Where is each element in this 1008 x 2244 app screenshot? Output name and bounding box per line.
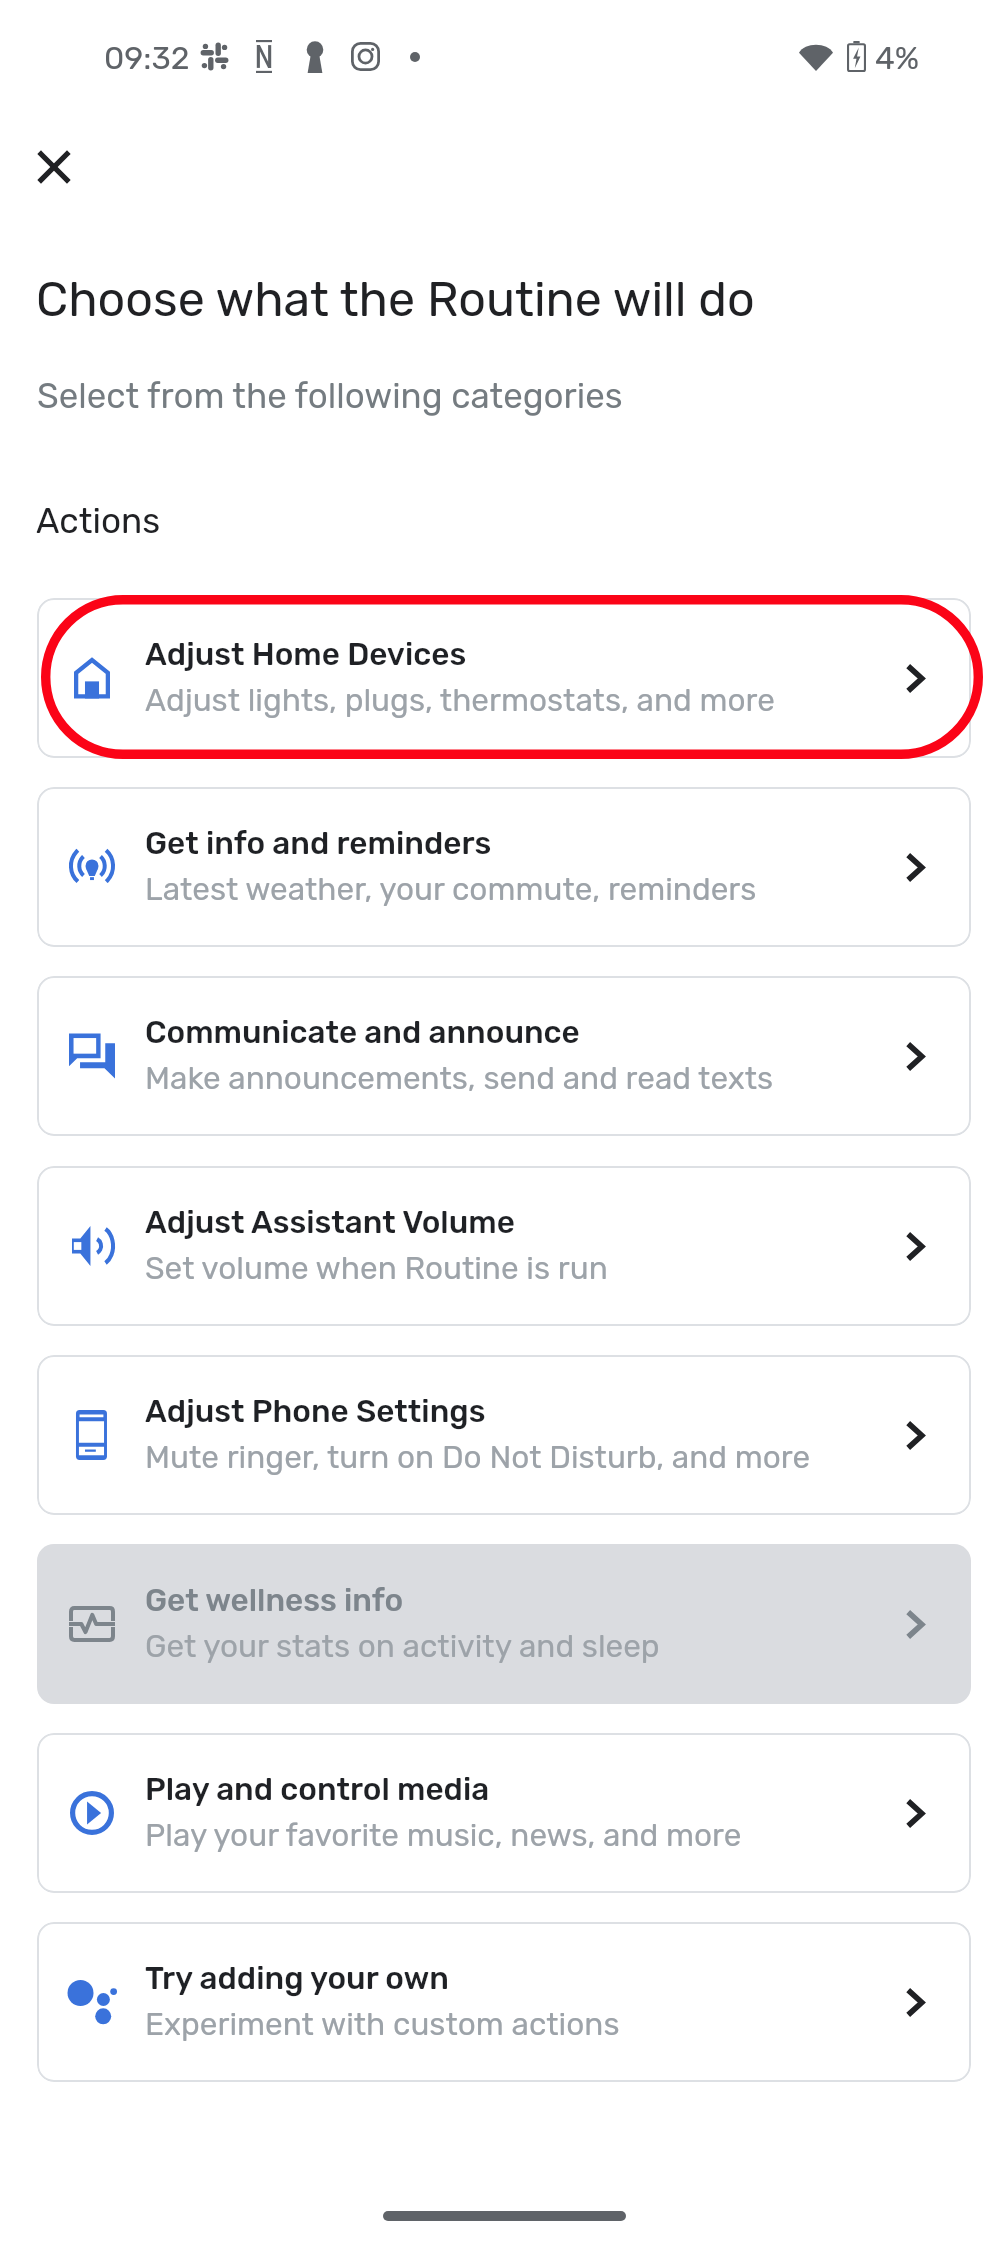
staticText: Choose what the Routine will do bbox=[36, 271, 755, 328]
staticText: Mute ringer, turn on Do Not Disturb, and… bbox=[145, 1439, 811, 1476]
staticText: Select from the following categories bbox=[37, 375, 623, 416]
button[interactable]: Adjust Assistant Volume bbox=[37, 1166, 971, 1326]
staticText: Adjust Assistant Volume bbox=[145, 1204, 515, 1241]
staticText: Try adding your own bbox=[145, 1960, 449, 1997]
staticText: Adjust lights, plugs, thermostats, and m… bbox=[145, 682, 775, 719]
staticText: Actions bbox=[36, 500, 161, 542]
button[interactable]: Close bbox=[12, 125, 96, 209]
staticText: Get your stats on activity and sleep bbox=[145, 1628, 660, 1665]
staticText: Adjust Phone Settings bbox=[145, 1393, 486, 1430]
button[interactable]: Get info and reminders bbox=[37, 787, 971, 947]
button[interactable]: Play and control media bbox=[37, 1733, 971, 1893]
staticText: Latest weather, your commute, reminders bbox=[145, 871, 757, 908]
button[interactable]: Communicate and announce bbox=[37, 976, 971, 1136]
button[interactable]: Adjust Phone Settings bbox=[37, 1355, 971, 1515]
staticText: Play and control media bbox=[145, 1771, 490, 1808]
staticText: 09:32 bbox=[104, 39, 190, 77]
staticText: Play your favorite music, news, and more bbox=[145, 1817, 742, 1854]
staticText: Make announcements, send and read texts bbox=[145, 1060, 774, 1097]
button[interactable]: Adjust Home Devices bbox=[37, 598, 971, 758]
staticText: 4% bbox=[875, 39, 920, 77]
staticText: Set volume when Routine is run bbox=[145, 1250, 608, 1287]
button[interactable]: Get wellness info bbox=[37, 1544, 971, 1704]
staticText: Adjust Home Devices bbox=[145, 636, 467, 673]
staticText: Get info and reminders bbox=[145, 825, 492, 862]
staticText: Experiment with custom actions bbox=[145, 2006, 620, 2043]
button[interactable]: Try adding your own bbox=[37, 1922, 971, 2082]
staticText: Get wellness info bbox=[145, 1582, 404, 1619]
staticText: Communicate and announce bbox=[145, 1014, 580, 1051]
